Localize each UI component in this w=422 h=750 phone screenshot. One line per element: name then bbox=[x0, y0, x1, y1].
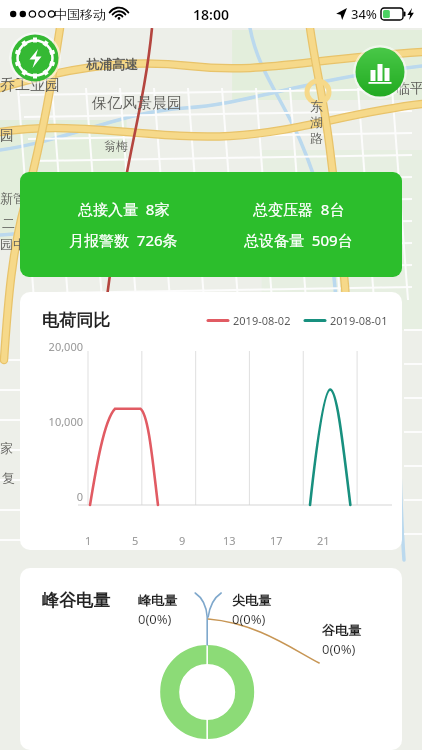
staticText: 20,000 bbox=[48, 339, 83, 354]
staticText: 2019-08-01 bbox=[330, 313, 388, 328]
staticText: 园中 bbox=[0, 236, 26, 252]
staticText: 2019-08-02 bbox=[233, 313, 291, 328]
staticText: 10,000 bbox=[48, 414, 83, 429]
staticText: 园 bbox=[0, 127, 14, 145]
staticText: 0(0%) bbox=[322, 640, 356, 658]
staticText: 总接入量 8家 bbox=[78, 199, 170, 219]
staticText: 总变压器 8台 bbox=[253, 199, 345, 219]
staticText: 13 bbox=[223, 533, 236, 548]
staticText: 0 bbox=[76, 489, 83, 504]
staticText: 5 bbox=[132, 533, 139, 548]
staticText: 路 bbox=[310, 130, 323, 146]
staticText: 复 bbox=[2, 470, 15, 486]
staticText: 二 bbox=[2, 215, 15, 231]
staticText: 1 bbox=[85, 533, 92, 548]
staticText: 月报警数 726条 bbox=[69, 230, 178, 250]
button[interactable]: 电力设备 bbox=[9, 32, 61, 84]
staticText: 17 bbox=[270, 533, 283, 548]
staticText: 34% bbox=[351, 5, 377, 23]
staticText: 保亿风景晨园 bbox=[92, 94, 182, 113]
staticText: 东 bbox=[310, 98, 323, 114]
staticText: 中国移动 bbox=[54, 6, 106, 22]
staticText: 峰电量 bbox=[138, 592, 177, 608]
staticText: 18:00 bbox=[193, 5, 229, 24]
button[interactable]: 总接入量 8家 bbox=[20, 172, 402, 277]
button[interactable]: 电荷同比 bbox=[20, 292, 402, 550]
staticText: 谷电量 bbox=[322, 622, 361, 638]
staticText: 0(0%) bbox=[138, 610, 172, 628]
staticText: 杭浦高速 bbox=[86, 56, 138, 72]
button[interactable]: 峰谷电量 bbox=[20, 568, 402, 750]
staticText: 家 bbox=[0, 440, 13, 456]
staticText: 电荷同比 bbox=[42, 310, 110, 331]
staticText: 临平 bbox=[396, 80, 422, 98]
staticText: 总设备量 509台 bbox=[244, 230, 353, 250]
staticText: 翁梅 bbox=[104, 138, 128, 153]
staticText: 9 bbox=[179, 533, 186, 548]
staticText: 湖 bbox=[310, 114, 323, 130]
staticText: 21 bbox=[317, 533, 330, 548]
staticText: 尖电量 bbox=[232, 592, 271, 608]
staticText: 乔工业园 bbox=[0, 76, 60, 95]
staticText: 峰谷电量 bbox=[42, 590, 110, 611]
button[interactable]: 统计报表 bbox=[353, 45, 407, 99]
staticText: 0(0%) bbox=[232, 610, 266, 628]
staticText: 新管 bbox=[0, 190, 26, 206]
